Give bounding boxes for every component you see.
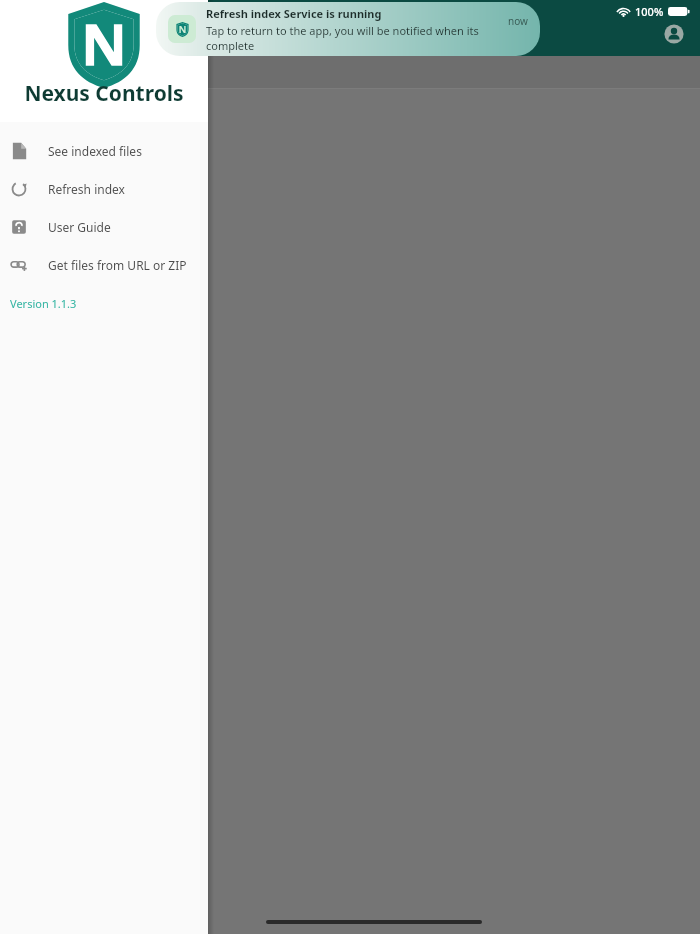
button[interactable]: Get files from URL or ZIP [0,246,208,284]
staticText: Oct 9 [60,4,88,19]
staticText: Tap to return to the app, you will be no… [206,23,502,53]
staticText: Version 1.1.3 [10,296,77,311]
staticText: Get files from URL or ZIP [48,257,187,273]
staticText: Refresh index [48,181,125,197]
button[interactable]: Refresh index Service is running [156,2,540,56]
button[interactable]: See indexed files [0,132,208,170]
button[interactable]: Refresh index [0,170,208,208]
staticText: Nexus Controls [24,79,184,108]
button[interactable]: User Guide [0,208,208,246]
staticText: User Guide [48,219,111,235]
button[interactable]: Account [656,16,692,52]
staticText: now [508,14,528,28]
staticText: 100% [635,4,664,19]
staticText: Refresh index Service is running [206,6,382,21]
staticText: See indexed files [48,143,142,159]
